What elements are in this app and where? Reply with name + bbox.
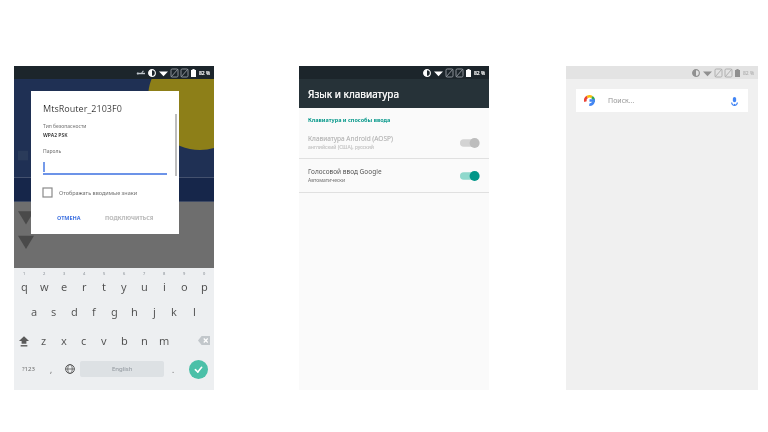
button[interactable]: m <box>154 326 174 355</box>
staticText: 1 <box>23 271 26 276</box>
staticText: ОТМЕНА <box>57 214 81 221</box>
staticText: u <box>141 279 148 294</box>
staticText: 82 % <box>199 70 211 77</box>
staticText: 82 % <box>474 70 486 77</box>
button[interactable]: z <box>34 326 54 355</box>
staticText: l <box>193 304 196 319</box>
button[interactable]: Клавиатура Android (AOSP) <box>299 132 489 153</box>
button[interactable]: c <box>74 326 94 355</box>
staticText: Клавиатура и способы ввода <box>308 116 391 123</box>
staticText: e <box>61 279 68 294</box>
staticText: y <box>121 279 127 294</box>
staticText: английский (США), русский <box>308 144 374 151</box>
staticText: 0 <box>203 271 206 276</box>
staticText: v <box>101 333 107 348</box>
staticText: r <box>82 279 87 294</box>
staticText: 5 <box>103 271 106 276</box>
staticText: 2 <box>43 271 46 276</box>
staticText: 7 <box>143 271 146 276</box>
staticText: m <box>159 333 170 348</box>
button[interactable]: l <box>184 297 204 326</box>
button[interactable]: Поиск... <box>576 89 748 112</box>
button[interactable]: , <box>42 355 60 383</box>
button[interactable]: 0 <box>194 271 214 297</box>
button[interactable]: f <box>84 297 104 326</box>
staticText: ?123 <box>22 365 35 373</box>
staticText: p <box>201 279 208 294</box>
staticText: s <box>51 304 57 319</box>
staticText: . <box>172 364 175 375</box>
staticText: 6 <box>123 271 126 276</box>
staticText: WPA2 PSK <box>43 132 68 139</box>
staticText: f <box>92 304 96 319</box>
button[interactable]: 8 <box>154 271 174 297</box>
staticText: Отображать вводимые знаки <box>59 189 138 196</box>
staticText: t <box>102 279 106 294</box>
button[interactable]: 7 <box>134 271 154 297</box>
button[interactable]: h <box>124 297 144 326</box>
staticText: 8 <box>163 271 166 276</box>
button[interactable]: Голосовой ввод Google <box>299 165 489 186</box>
staticText: w <box>40 279 49 294</box>
staticText: ПОДКЛЮЧИТЬСЯ <box>105 214 154 221</box>
button[interactable]: 1 <box>14 271 34 297</box>
button[interactable]: 3 <box>54 271 74 297</box>
button[interactable]: Отображать вводимые знаки <box>43 188 138 197</box>
button[interactable]: 4 <box>74 271 94 297</box>
button[interactable]: s <box>44 297 64 326</box>
button[interactable]: 5 <box>94 271 114 297</box>
staticText: , <box>50 364 53 375</box>
button[interactable]: b <box>114 326 134 355</box>
staticText: q <box>21 279 28 294</box>
button[interactable]: Change language <box>60 355 80 383</box>
button[interactable]: n <box>134 326 154 355</box>
button[interactable]: Enter <box>182 355 214 383</box>
staticText: o <box>181 279 188 294</box>
button[interactable]: 9 <box>174 271 194 297</box>
staticText: English <box>112 365 133 373</box>
staticText: Пароль <box>43 148 62 155</box>
staticText: Голосовой ввод Google <box>308 167 382 176</box>
staticText: a <box>31 304 38 319</box>
staticText: Поиск... <box>608 96 635 106</box>
staticText: b <box>121 333 128 348</box>
button[interactable]: k <box>164 297 184 326</box>
button[interactable]: Backspace <box>194 326 214 355</box>
staticText: MtsRouter_2103F0 <box>43 102 122 114</box>
button[interactable]: 6 <box>114 271 134 297</box>
staticText: k <box>171 304 177 319</box>
button[interactable]: Voice search <box>728 95 740 107</box>
button[interactable]: x <box>54 326 74 355</box>
staticText: n <box>141 333 148 348</box>
staticText: 4 <box>83 271 86 276</box>
staticText: x <box>61 333 67 348</box>
button[interactable]: ПОДКЛЮЧИТЬСЯ <box>99 211 160 224</box>
staticText: Тип безопасности <box>43 123 87 130</box>
staticText: i <box>163 279 166 294</box>
staticText: c <box>81 333 87 348</box>
staticText: 82 % <box>743 70 755 77</box>
button[interactable]: j <box>144 297 164 326</box>
button[interactable]: Клавиатура Android (AOSP) <box>458 137 480 149</box>
button[interactable]: . <box>164 355 182 383</box>
staticText: z <box>41 333 47 348</box>
staticText: h <box>131 304 138 319</box>
staticText: Автоматически <box>308 177 346 184</box>
staticText: 9 <box>183 271 186 276</box>
button[interactable]: 2 <box>34 271 54 297</box>
button[interactable]: d <box>64 297 84 326</box>
staticText: j <box>153 304 156 319</box>
button[interactable]: Голосовой ввод Google <box>458 170 480 182</box>
staticText: Клавиатура Android (AOSP) <box>308 134 393 143</box>
staticText: d <box>71 304 78 319</box>
button[interactable]: ?123 <box>14 355 42 383</box>
button[interactable]: a <box>24 297 44 326</box>
button[interactable]: Shift <box>14 326 34 355</box>
button[interactable]: v <box>94 326 114 355</box>
button[interactable]: Язык и клавиатура <box>299 79 489 108</box>
staticText: Язык и клавиатура <box>308 87 399 101</box>
staticText: 3 <box>63 271 66 276</box>
button[interactable]: g <box>104 297 124 326</box>
button[interactable]: English <box>80 361 164 377</box>
button[interactable]: ОТМЕНА <box>51 211 87 224</box>
